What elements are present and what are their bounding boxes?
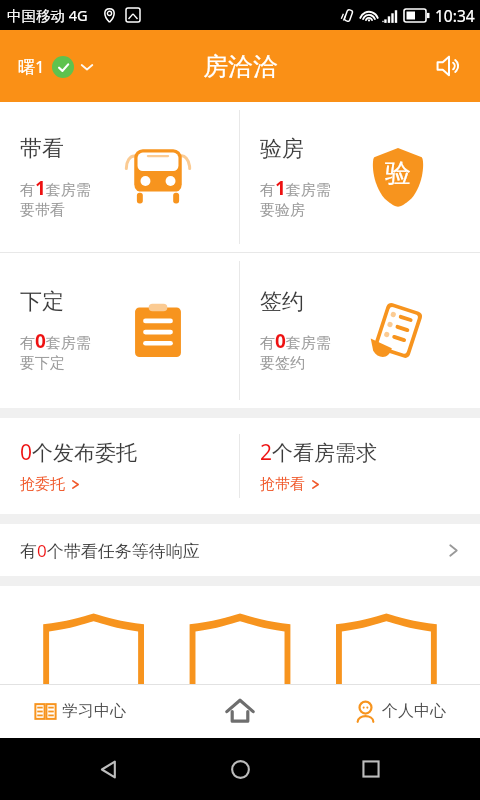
staticText: 中国移动 4G <box>7 5 88 25</box>
staticText: 学习中心 <box>62 701 126 721</box>
staticText: 10:34 <box>435 5 475 26</box>
staticText: 带看 <box>20 135 64 163</box>
staticText: 抢带看 <box>260 475 305 494</box>
button[interactable]: 签约 <box>240 253 480 408</box>
staticText: 要签约 <box>260 354 305 373</box>
staticText: 有0套房需 <box>20 328 91 354</box>
button[interactable]: 2个看房需求 <box>240 418 480 514</box>
button[interactable]: 验房 <box>240 102 480 252</box>
staticText: 有0个带看任务等待响应 <box>20 539 200 562</box>
button[interactable]: 0个发布委托 <box>0 418 239 514</box>
button[interactable]: 曙1 <box>16 49 96 84</box>
staticText: 验房 <box>260 135 304 163</box>
staticText: 下定 <box>20 288 64 316</box>
staticText: 曙1 <box>18 55 45 78</box>
staticText: 要带看 <box>20 201 65 220</box>
button[interactable]: 带看 <box>0 102 239 252</box>
staticText: 有1套房需 <box>260 175 331 201</box>
staticText: 要下定 <box>20 354 65 373</box>
staticText: 个人中心 <box>382 701 446 721</box>
button[interactable]: 个人中心 <box>320 684 480 738</box>
staticText: 房洽洽 <box>203 51 278 82</box>
button[interactable]: 下定 <box>0 253 239 408</box>
staticText: 要验房 <box>260 201 305 220</box>
staticText: 有1套房需 <box>20 175 91 201</box>
button[interactable]: Announcements <box>428 45 470 87</box>
staticText: 0个发布委托 <box>20 438 138 467</box>
button[interactable]: Back <box>87 747 131 791</box>
staticText: 验 <box>385 157 411 190</box>
button[interactable]: Recents <box>349 747 393 791</box>
button[interactable]: Home <box>160 684 320 738</box>
button[interactable]: 学习中心 <box>0 684 160 738</box>
button[interactable]: Home <box>218 747 262 791</box>
staticText: 签约 <box>260 288 304 316</box>
staticText: 2个看房需求 <box>260 438 378 467</box>
staticText: 有0套房需 <box>260 328 331 354</box>
staticText: 抢委托 <box>20 475 65 494</box>
button[interactable]: 有0个带看任务等待响应 <box>0 524 480 576</box>
